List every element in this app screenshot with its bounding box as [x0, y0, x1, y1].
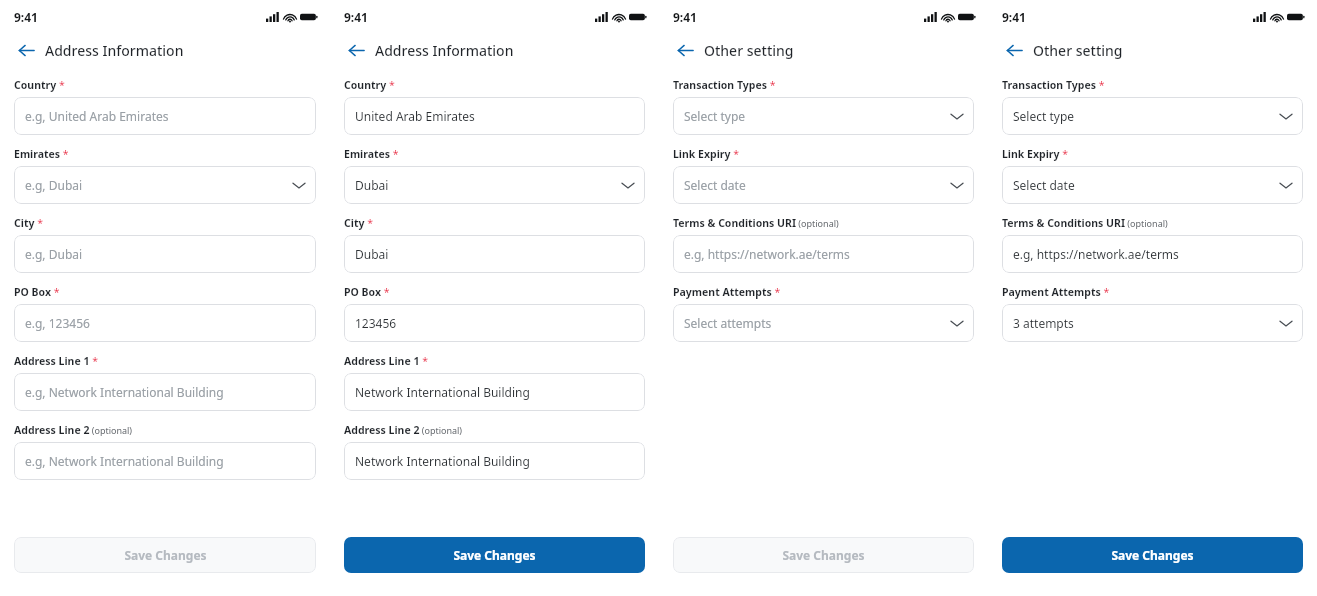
button[interactable]: Select type: [673, 97, 974, 135]
staticText: Other setting: [1033, 41, 1123, 60]
staticText: Select date: [1013, 177, 1075, 193]
button[interactable]: Save Changes: [1002, 537, 1303, 573]
staticText: 123456: [355, 315, 397, 331]
button[interactable]: e.g, https://network.ae/terms: [1002, 235, 1303, 273]
button[interactable]: 3 attempts: [1002, 304, 1303, 342]
staticText: Network International Building: [355, 384, 530, 400]
staticText: e.g, United Arab Emirates: [25, 108, 169, 124]
staticText: 9:41: [673, 9, 697, 25]
staticText: Address Information: [375, 41, 514, 60]
staticText: 9:41: [344, 9, 368, 25]
button[interactable]: Back: [671, 36, 699, 64]
button[interactable]: 123456: [344, 304, 645, 342]
staticText: Link Expiry *: [673, 147, 740, 161]
staticText: Transaction Types *: [673, 78, 776, 92]
staticText: PO Box *: [14, 285, 60, 299]
staticText: Emirates *: [14, 147, 69, 161]
button[interactable]: Select attempts: [673, 304, 974, 342]
staticText: Network International Building: [355, 453, 530, 469]
button[interactable]: United Arab Emirates: [344, 97, 645, 135]
staticText: Other setting: [704, 41, 794, 60]
staticText: City *: [14, 216, 43, 230]
button[interactable]: Select date: [673, 166, 974, 204]
button[interactable]: Select type: [1002, 97, 1303, 135]
staticText: Save Changes: [1111, 547, 1194, 563]
staticText: Save Changes: [124, 547, 207, 563]
staticText: e.g, Dubai: [25, 246, 83, 262]
button[interactable]: Back: [1000, 36, 1028, 64]
staticText: Address Line 2 (optional): [14, 423, 133, 437]
staticText: Save Changes: [782, 547, 865, 563]
staticText: Country *: [344, 78, 395, 92]
staticText: e.g, Network International Building: [25, 453, 224, 469]
button[interactable]: Network International Building: [344, 442, 645, 480]
staticText: Terms & Conditions URI (optional): [1002, 216, 1168, 230]
button[interactable]: Dubai: [344, 166, 645, 204]
button[interactable]: Network International Building: [344, 373, 645, 411]
staticText: Payment Attempts *: [673, 285, 781, 299]
staticText: Transaction Types *: [1002, 78, 1105, 92]
staticText: Link Expiry *: [1002, 147, 1069, 161]
staticText: Payment Attempts *: [1002, 285, 1110, 299]
staticText: e.g, Dubai: [25, 177, 83, 193]
button[interactable]: e.g, Dubai: [14, 166, 316, 204]
staticText: Address Information: [45, 41, 184, 60]
staticText: City *: [344, 216, 373, 230]
button[interactable]: Back: [12, 36, 40, 64]
staticText: e.g, 123456: [25, 315, 90, 331]
staticText: Select attempts: [684, 315, 772, 331]
staticText: e.g, https://network.ae/terms: [1013, 246, 1179, 262]
staticText: Country *: [14, 78, 65, 92]
staticText: Dubai: [355, 246, 389, 262]
button[interactable]: e.g, https://network.ae/terms: [673, 235, 974, 273]
staticText: 9:41: [1002, 9, 1026, 25]
button[interactable]: Save Changes: [673, 537, 974, 573]
staticText: PO Box *: [344, 285, 390, 299]
staticText: e.g, Network International Building: [25, 384, 224, 400]
button[interactable]: e.g, United Arab Emirates: [14, 97, 316, 135]
staticText: Select type: [684, 108, 746, 124]
button[interactable]: Save Changes: [14, 537, 316, 573]
button[interactable]: Dubai: [344, 235, 645, 273]
staticText: Select type: [1013, 108, 1075, 124]
button[interactable]: e.g, Network International Building: [14, 373, 316, 411]
button[interactable]: e.g, Dubai: [14, 235, 316, 273]
button[interactable]: Back: [342, 36, 370, 64]
staticText: Address Line 1 *: [344, 354, 428, 368]
staticText: Address Line 2 (optional): [344, 423, 463, 437]
staticText: Address Line 1 *: [14, 354, 98, 368]
staticText: Emirates *: [344, 147, 399, 161]
staticText: 3 attempts: [1013, 315, 1074, 331]
button[interactable]: e.g, 123456: [14, 304, 316, 342]
staticText: Dubai: [355, 177, 389, 193]
staticText: Save Changes: [453, 547, 536, 563]
staticText: United Arab Emirates: [355, 108, 475, 124]
staticText: e.g, https://network.ae/terms: [684, 246, 850, 262]
button[interactable]: e.g, Network International Building: [14, 442, 316, 480]
staticText: 9:41: [14, 9, 38, 25]
staticText: Terms & Conditions URI (optional): [673, 216, 839, 230]
staticText: Select date: [684, 177, 746, 193]
button[interactable]: Save Changes: [344, 537, 645, 573]
button[interactable]: Select date: [1002, 166, 1303, 204]
